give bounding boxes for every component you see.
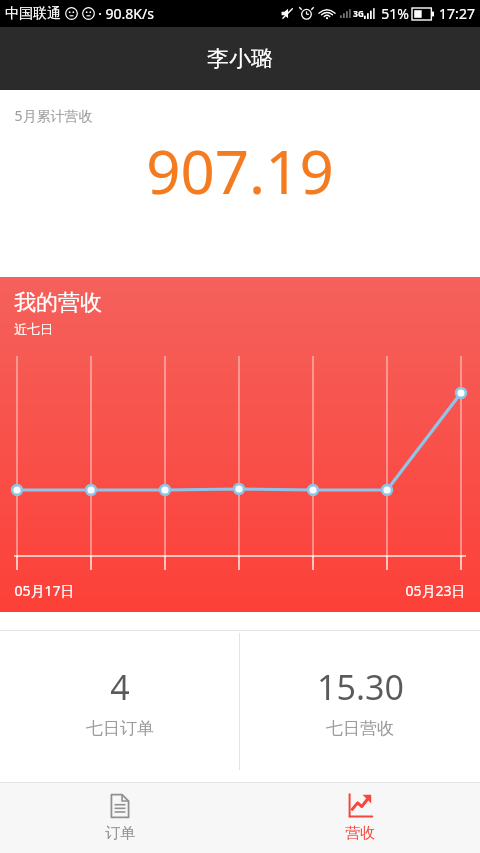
- staticText: 李小璐: [207, 45, 273, 73]
- staticText: 七日营收: [326, 718, 394, 739]
- staticText: 05月23日: [405, 581, 466, 600]
- staticText: 51%: [381, 4, 409, 23]
- button[interactable]: 我的营收: [0, 277, 480, 612]
- staticText: 订单: [105, 824, 135, 843]
- staticText: 营收: [345, 824, 375, 843]
- staticText: 3G: [353, 8, 364, 19]
- staticText: 近七日: [14, 321, 53, 337]
- staticText: 5月累计营收: [14, 106, 93, 125]
- staticText: 我的营收: [14, 289, 102, 317]
- button[interactable]: 4: [0, 631, 239, 772]
- staticText: · 90.8K/s: [98, 4, 154, 23]
- staticText: 中国联通: [5, 5, 61, 23]
- staticText: 4: [110, 664, 130, 710]
- button[interactable]: 15.30: [240, 631, 480, 772]
- button[interactable]: 营收: [240, 783, 480, 853]
- staticText: 05月17日: [14, 581, 75, 600]
- staticText: 七日订单: [86, 718, 154, 739]
- staticText: 907.19: [146, 130, 334, 212]
- staticText: 17:27: [439, 4, 475, 23]
- staticText: 15.30: [317, 664, 404, 710]
- button[interactable]: 订单: [0, 783, 240, 853]
